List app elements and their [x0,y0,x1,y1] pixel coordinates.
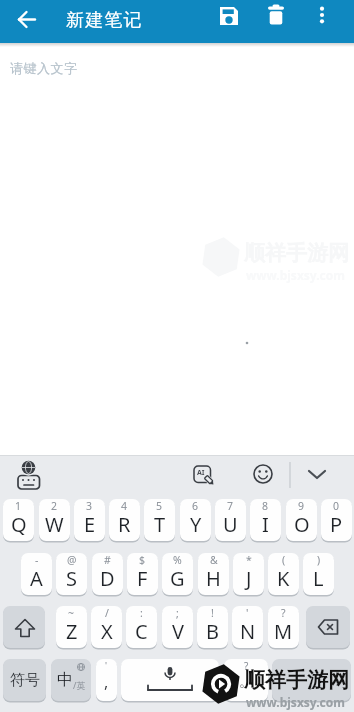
button[interactable]: : [126,606,157,648]
button[interactable]: - [21,553,52,595]
staticText: Y [190,511,202,538]
button[interactable] [307,0,337,43]
staticText: 6 [192,499,199,513]
staticText: /英 [73,679,86,691]
staticText: J [246,565,252,592]
staticText: : [140,606,143,620]
staticText: L [313,565,324,592]
staticText: R [118,511,131,538]
button[interactable]: 2 [39,499,70,541]
button[interactable]: 9 [286,499,317,541]
staticText: F [137,565,148,592]
button[interactable]: ( [268,553,299,595]
staticText: ! [211,606,214,620]
staticText: S [66,565,77,592]
button[interactable]: AI [190,461,218,489]
staticText: * [246,553,252,567]
staticText: N [240,618,256,645]
button[interactable]: $ [127,553,158,595]
button[interactable]: ! [197,606,228,648]
staticText: 5 [156,499,163,513]
staticText: ) [317,553,321,567]
button[interactable]: 3 [74,499,105,541]
staticText: E [84,511,96,538]
staticText: # [104,553,111,567]
button[interactable]: ; [162,606,193,648]
button[interactable] [121,659,219,701]
staticText: B [206,618,219,645]
button[interactable] [306,606,350,648]
button[interactable]: 6 [180,499,211,541]
staticText: ( [282,553,286,567]
button[interactable] [9,2,47,40]
staticText: 7 [227,499,234,513]
staticText: W [45,511,64,538]
button[interactable] [303,460,331,488]
button[interactable]: 8 [250,499,281,541]
staticText: 1 [15,499,22,513]
staticText: @ [67,553,77,567]
staticText: 请键入文字 [10,60,78,76]
button[interactable] [214,2,244,32]
button[interactable] [272,659,351,701]
button[interactable]: 5 [144,499,175,541]
staticText: 4 [121,499,128,513]
button[interactable]: % [162,553,193,595]
staticText: K [277,565,290,592]
staticText: I [262,511,269,538]
button[interactable]: * [233,553,264,595]
staticText: ? [281,606,286,620]
button[interactable]: ' [232,606,263,648]
staticText: C [135,618,148,645]
staticText: ~ [68,606,75,620]
button[interactable]: 0 [321,499,352,541]
staticText: 中 [57,670,73,690]
button[interactable]: 中 [51,659,91,701]
button[interactable]: ) [303,553,334,595]
button[interactable] [261,2,291,32]
button[interactable] [3,606,45,648]
staticText: 顺祥手游网 [244,240,349,266]
staticText: 0 [333,499,340,513]
staticText: Z [66,618,78,645]
staticText: 符号 [10,671,40,690]
staticText: 9 [298,499,305,513]
staticText: T [154,511,166,538]
staticText: Q [11,511,27,538]
button[interactable]: ~ [56,606,87,648]
button[interactable]: # [92,553,123,595]
staticText: 。 [239,673,253,691]
staticText: / [105,606,109,620]
staticText: ' [246,606,249,620]
staticText: $ [139,553,146,567]
button[interactable]: ' [96,659,117,701]
button[interactable]: / [91,606,122,648]
button[interactable]: ? [268,606,299,648]
button[interactable]: 符号 [3,659,46,701]
staticText: ' [105,659,108,671]
button[interactable]: 4 [109,499,140,541]
button[interactable] [249,460,277,488]
staticText: V [172,618,184,645]
staticText: 8 [262,499,269,513]
staticText: D [100,565,115,592]
staticText: M [274,618,293,645]
button[interactable]: 7 [215,499,246,541]
staticText: X [101,618,113,645]
button[interactable]: & [198,553,229,595]
button[interactable]: @ [56,553,87,595]
button[interactable]: 1 [3,499,34,541]
button[interactable]: ? [224,659,268,701]
staticText: O [294,511,310,538]
staticText: www.bjsxsy.com [246,694,345,710]
staticText: ? [244,659,249,673]
staticText: % [173,553,182,567]
button[interactable] [13,458,45,490]
staticText: - [35,553,39,567]
staticText: 顺祥手游网 [244,667,349,693]
staticText: H [206,565,221,592]
staticText: ; [176,606,179,620]
staticText: A [30,565,43,592]
staticText: 2 [51,499,58,513]
